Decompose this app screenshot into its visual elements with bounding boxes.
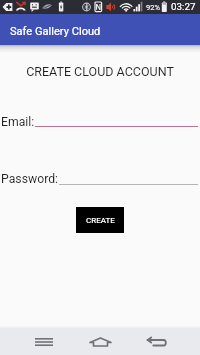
staticText: 92% — [146, 3, 160, 12]
button[interactable]: Home — [86, 328, 114, 355]
staticText: CREATE CLOUD ACCOUNT — [0, 64, 200, 79]
staticText: Password: — [1, 172, 59, 186]
staticText: CREATE — [86, 216, 115, 225]
button[interactable]: Recent apps — [30, 328, 58, 355]
button[interactable]: Back — [143, 328, 171, 355]
staticText: Safe Gallery Cloud — [10, 25, 101, 38]
staticText: Email: — [1, 115, 35, 129]
button[interactable]: CREATE — [76, 207, 124, 233]
staticText: 03:27 — [171, 1, 196, 12]
